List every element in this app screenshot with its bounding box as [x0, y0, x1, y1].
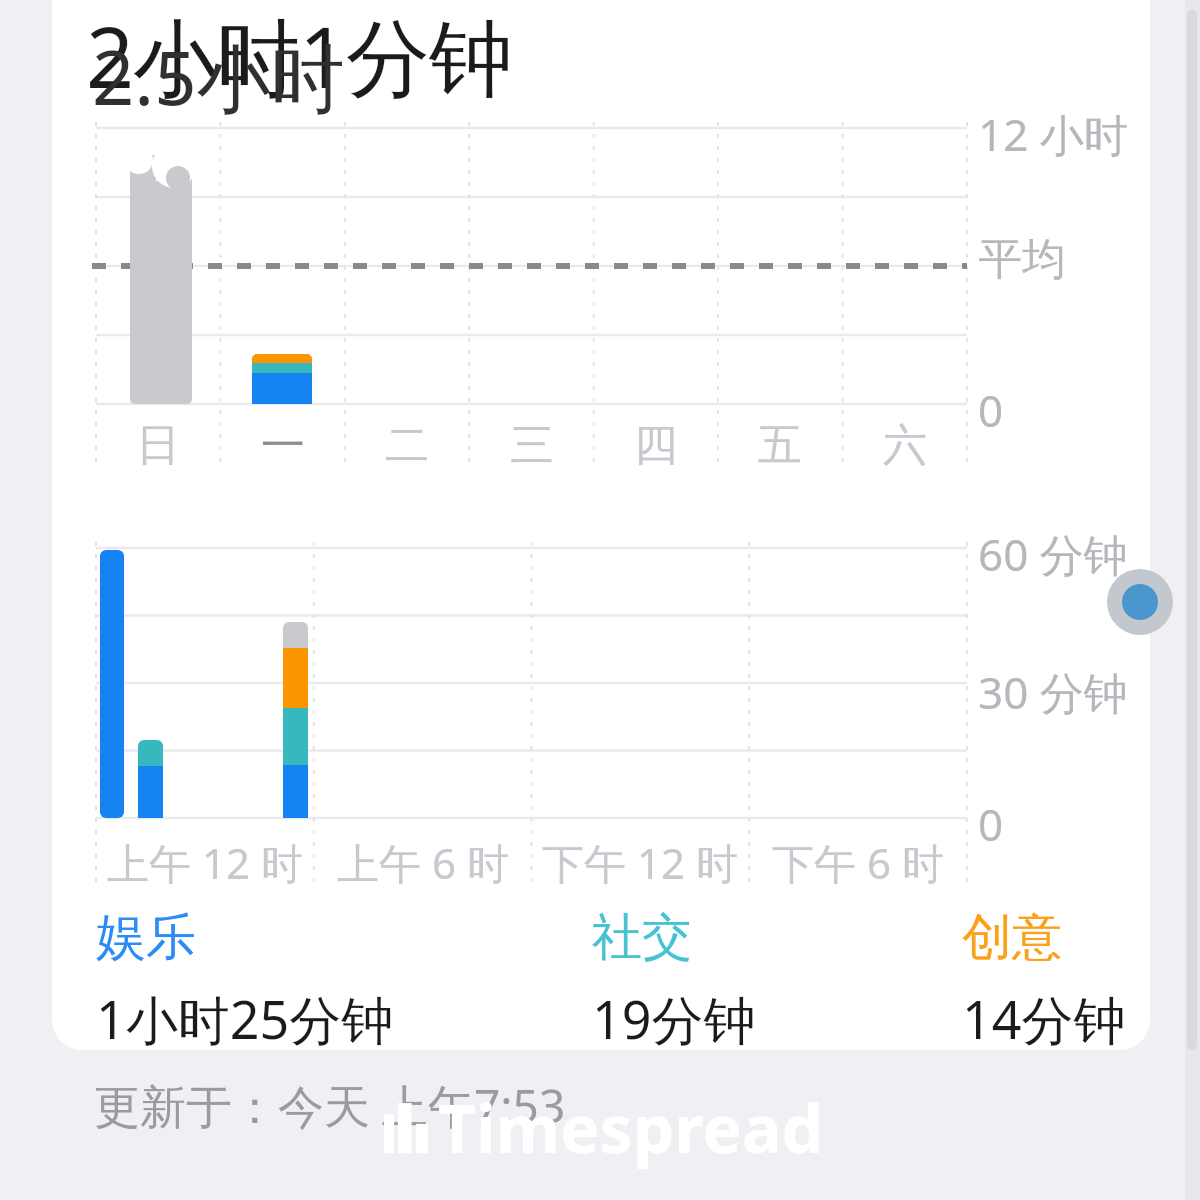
staticText: 更新于：今天 上午7:53 [94, 1074, 566, 1137]
staticText: 0 [978, 380, 1004, 440]
staticText: 14分钟 [962, 983, 1126, 1054]
staticText: 12 小时 [978, 104, 1128, 164]
staticText: 三 [510, 418, 554, 473]
staticText: 19分钟 [592, 983, 756, 1054]
staticText: 60 分钟 [978, 524, 1128, 584]
staticText: 一 [261, 418, 305, 473]
staticText: 下午 12 时 [542, 834, 738, 891]
staticText: 六 [883, 418, 927, 473]
staticText: 社交 [592, 906, 692, 969]
staticText: 娱乐 [96, 906, 196, 969]
staticText: 平均 [978, 232, 1066, 287]
staticText: 0 [978, 794, 1004, 854]
staticText: 2小时1分钟 [86, 0, 513, 113]
staticText: Timespread [438, 1082, 824, 1172]
staticText: 上午 12 时 [107, 834, 303, 891]
staticText: 上午 6 时 [337, 834, 509, 891]
staticText: 下午 6 时 [772, 834, 944, 891]
staticText: 30 分钟 [978, 662, 1128, 722]
staticText: 1小时25分钟 [96, 983, 394, 1054]
staticText: 创意 [962, 906, 1062, 969]
staticText: 二 [385, 418, 429, 473]
button[interactable]: Scroll handle [1107, 569, 1173, 635]
staticText: 五 [758, 418, 802, 473]
button[interactable]: 社交 [592, 906, 760, 1054]
staticText: 四 [634, 418, 678, 473]
button[interactable]: 创意 [962, 906, 1130, 1054]
staticText: 日 [136, 418, 180, 473]
button[interactable]: 娱乐 [96, 906, 398, 1054]
staticText: 2.5小时 [92, 26, 345, 127]
